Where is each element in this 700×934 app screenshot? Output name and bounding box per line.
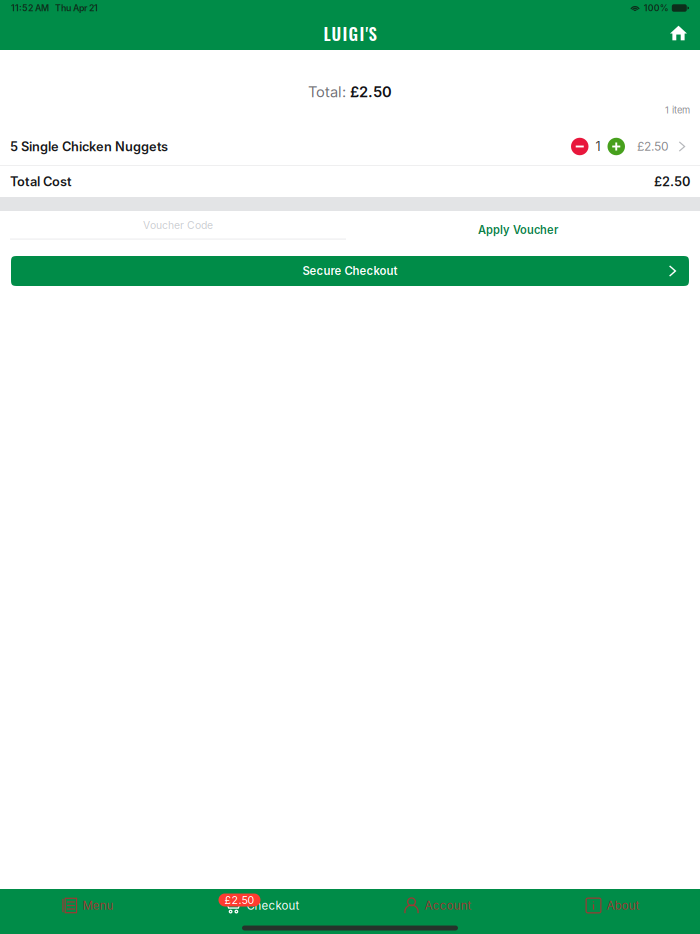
staticText: £2.50 xyxy=(637,139,669,154)
staticText: Apply Voucher xyxy=(478,223,558,237)
staticText: L U I G I 'S xyxy=(323,21,376,46)
staticText: Checkout xyxy=(246,899,299,912)
staticText: £2.50 xyxy=(654,174,690,189)
button[interactable]: Menu xyxy=(0,893,175,917)
staticText: Total Cost xyxy=(10,174,72,189)
button[interactable]: Account xyxy=(350,893,525,917)
staticText: 11:52 AM xyxy=(11,3,49,13)
staticText: 5 Single Chicken Nuggets xyxy=(10,139,168,154)
button[interactable]: Checkout xyxy=(175,893,350,917)
staticText: £2.50 xyxy=(350,83,392,101)
staticText: Menu xyxy=(82,899,113,912)
staticText: 1 xyxy=(595,139,600,154)
staticText: Account xyxy=(424,899,471,912)
staticText: About xyxy=(606,899,639,912)
staticText: Secure Checkout xyxy=(302,264,397,278)
staticText: £2.50 xyxy=(224,893,254,906)
button[interactable]: Secure Checkout xyxy=(11,256,689,286)
staticText: Voucher Code xyxy=(143,219,213,232)
staticText: 100% xyxy=(644,3,669,13)
button[interactable]: About xyxy=(525,893,700,917)
button[interactable]: 5 Single Chicken Nuggets xyxy=(0,128,700,165)
button[interactable]: Apply Voucher xyxy=(346,211,690,249)
button[interactable]: Home xyxy=(656,22,700,50)
staticText: 1 item xyxy=(665,104,690,116)
staticText: Total: xyxy=(308,83,350,101)
staticText: Thu Apr 21 xyxy=(55,3,98,13)
